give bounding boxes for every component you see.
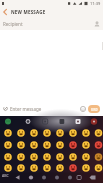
button[interactable]: ABC [2,173,9,178]
button[interactable] [41,151,53,163]
button[interactable] [41,162,53,174]
button[interactable] [13,172,22,183]
button[interactable] [91,151,103,163]
button[interactable] [54,127,66,139]
button[interactable] [73,116,83,127]
button[interactable] [57,116,67,127]
button[interactable] [2,139,14,151]
button[interactable] [41,127,53,139]
button[interactable] [40,172,49,183]
button[interactable] [66,172,75,183]
staticText: Enter message [10,106,42,112]
staticText: Recipient [3,21,23,27]
button[interactable] [91,127,103,139]
button[interactable] [67,127,79,139]
button[interactable] [15,162,27,174]
button[interactable] [2,162,14,174]
button[interactable] [54,151,66,163]
button[interactable] [15,139,27,151]
button[interactable] [67,151,79,163]
button[interactable] [0,7,10,17]
button[interactable] [15,151,27,163]
button[interactable] [2,151,14,163]
button[interactable] [3,116,13,127]
button[interactable] [28,151,40,163]
button[interactable]: Recipient [3,17,100,30]
button[interactable] [67,139,79,151]
button[interactable] [80,139,92,151]
button[interactable] [40,116,50,127]
button[interactable] [54,162,66,174]
button[interactable] [53,172,62,183]
button[interactable] [80,127,92,139]
button[interactable]: SEND [88,105,100,113]
button[interactable] [28,127,40,139]
button[interactable] [80,162,92,174]
button[interactable] [80,151,92,163]
button[interactable] [67,162,79,174]
button[interactable] [27,172,36,183]
button[interactable] [88,172,97,183]
button[interactable] [28,162,40,174]
staticText: NEW MESSAGE [11,9,46,15]
staticText: 11:39 [90,1,101,6]
button[interactable] [15,127,27,139]
button[interactable] [89,116,99,127]
button[interactable] [54,139,66,151]
button[interactable] [91,139,103,151]
button[interactable] [41,139,53,151]
button[interactable] [28,139,40,151]
button[interactable] [80,106,86,112]
button[interactable] [75,172,84,183]
staticText: SEND [91,108,98,111]
button[interactable] [23,116,33,127]
button[interactable] [2,127,14,139]
button[interactable] [91,162,103,174]
